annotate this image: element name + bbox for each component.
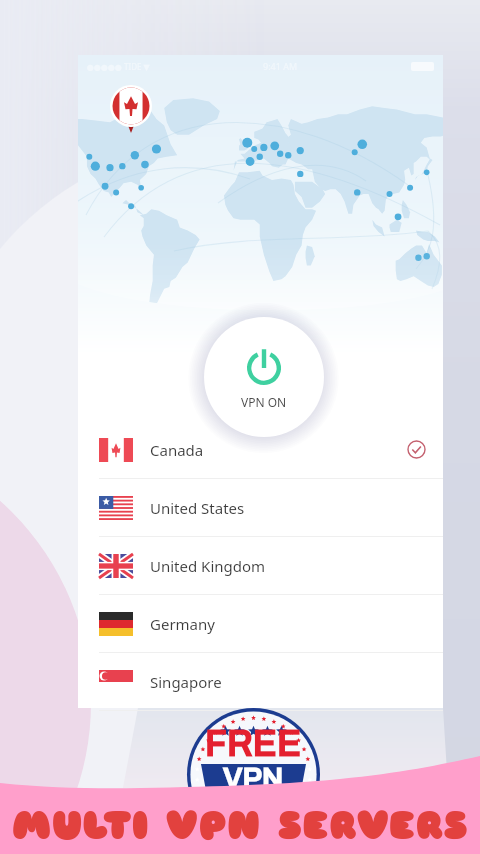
staticText: VPN ON — [241, 394, 287, 410]
button[interactable]: Canada — [78, 421, 443, 479]
staticText: Germany — [150, 614, 215, 634]
staticText: Singapore — [150, 672, 222, 692]
staticText: FREE — [205, 724, 302, 763]
button[interactable]: Toggle VPN — [204, 317, 324, 437]
staticText: 9:41 AM — [263, 60, 298, 72]
button[interactable]: Singapore — [78, 653, 443, 711]
staticText: MULTI VPN SERVERS — [0, 801, 480, 854]
staticText: United Kingdom — [150, 556, 266, 576]
button[interactable]: United States — [78, 479, 443, 537]
staticText: ●●●●● TIDE ▼ — [87, 61, 150, 72]
button[interactable]: United Kingdom — [78, 537, 443, 595]
button[interactable]: Germany — [78, 595, 443, 653]
staticText: Canada — [150, 440, 204, 460]
staticText: VPN — [223, 763, 284, 795]
staticText: United States — [150, 498, 245, 518]
